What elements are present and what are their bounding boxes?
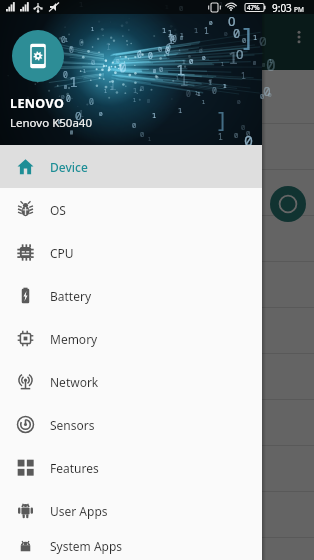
- staticText: Enforcing: [14, 471, 59, 485]
- button[interactable]: SELinux: [0, 446, 314, 491]
- staticText: 0: [120, 64, 125, 75]
- staticText: K50a40_S123: [14, 195, 76, 209]
- staticText: Memory: [50, 331, 98, 347]
- staticText: 0: [233, 25, 241, 41]
- staticText: 0: [64, 84, 68, 91]
- staticText: 1: [223, 82, 227, 90]
- staticText: 0: [140, 84, 145, 94]
- staticText: ]: [243, 18, 252, 53]
- button[interactable]: Kernel: [0, 262, 314, 307]
- staticText: 0: [148, 50, 153, 61]
- staticText: 9:03: [272, 1, 292, 15]
- button[interactable]: Network: [0, 360, 262, 403]
- button[interactable]: Root Access: [0, 354, 314, 399]
- staticText: 1: [152, 111, 157, 121]
- staticText: 1: [178, 106, 183, 116]
- staticText: 1: [241, 70, 246, 81]
- button[interactable]: System Apps: [0, 532, 262, 560]
- staticText: 0: [262, 62, 266, 69]
- staticText: 1: [79, 0, 84, 10]
- staticText: 0: [147, 98, 151, 105]
- staticText: Treble: [14, 499, 47, 514]
- button[interactable]: Treble: [0, 492, 314, 537]
- staticText: System Uptime: [14, 407, 94, 422]
- staticText: 0: [169, 32, 174, 43]
- staticText: 1: [219, 0, 224, 10]
- button[interactable]: CPU: [0, 231, 262, 274]
- staticText: 0: [116, 57, 120, 65]
- staticText: 0: [140, 130, 145, 140]
- staticText: Lenovo K50a40: [10, 115, 93, 131]
- button[interactable]: Android Version: [0, 78, 314, 123]
- staticText: 0: [189, 57, 194, 67]
- staticText: 0: [79, 37, 84, 48]
- button[interactable]: Security Patch: [0, 124, 314, 169]
- staticText: 0: [119, 58, 127, 76]
- staticText: 1: [221, 61, 225, 68]
- staticText: User Apps: [50, 503, 108, 519]
- button[interactable]: User Apps: [0, 489, 262, 532]
- staticText: 0: [165, 45, 170, 56]
- staticText: 0: [166, 42, 171, 53]
- staticText: System Apps: [50, 538, 123, 554]
- staticText: 0: [180, 35, 184, 42]
- staticText: Network: [50, 374, 99, 390]
- staticText: 1: [91, 26, 95, 33]
- staticText: 1: [172, 35, 176, 42]
- staticText: 0: [242, 36, 247, 46]
- staticText: 1: [176, 75, 180, 82]
- staticText: Features: [50, 460, 99, 476]
- staticText: 0: [61, 93, 65, 101]
- button[interactable]: OS: [0, 188, 262, 231]
- staticText: Device: [50, 159, 88, 175]
- staticText: 1: [79, 108, 84, 119]
- staticText: 47%: [247, 3, 260, 11]
- staticText: PM: [294, 5, 304, 14]
- staticText: 0: [70, 130, 74, 137]
- staticText: 0: [236, 45, 244, 63]
- button[interactable]: Build Number: [0, 170, 314, 215]
- staticText: 0: [253, 60, 257, 67]
- staticText: 1: [269, 58, 273, 65]
- button[interactable]: Features: [0, 446, 262, 489]
- button[interactable]: Device: [0, 145, 262, 188]
- button[interactable]: Java VM: [0, 308, 314, 353]
- staticText: 1: [106, 41, 111, 52]
- staticText: 0: [137, 49, 142, 60]
- button[interactable]: System Uptime: [0, 400, 314, 445]
- staticText: 0: [99, 110, 103, 118]
- staticText: OS: [50, 202, 66, 218]
- staticText: 0: [159, 65, 164, 75]
- button[interactable]: Memory: [0, 317, 262, 360]
- staticText: 1: [195, 90, 199, 97]
- staticText: 0: [153, 68, 157, 75]
- staticText: 0: [132, 121, 137, 131]
- staticText: 1: [167, 30, 175, 48]
- button[interactable]: Battery: [0, 274, 262, 317]
- staticText: Build Number: [14, 177, 88, 192]
- staticText: 0: [91, 58, 96, 68]
- button[interactable]: Refresh: [270, 186, 306, 222]
- staticText: unknown: [14, 241, 58, 255]
- staticText: 0: [119, 64, 123, 72]
- staticText: 0: [209, 78, 213, 85]
- staticText: 1: [110, 84, 114, 92]
- staticText: 1: [83, 68, 87, 75]
- staticText: 0: [70, 129, 74, 136]
- staticText: 1: [218, 131, 223, 142]
- staticText: 1: [65, 37, 69, 44]
- button[interactable]: Bootloader: [0, 216, 314, 261]
- staticText: 0: [241, 123, 246, 133]
- staticText: 1: [69, 71, 79, 91]
- staticText: 1: [168, 28, 173, 38]
- staticText: 1: [204, 25, 209, 36]
- button[interactable]: Sensors: [0, 403, 262, 446]
- staticText: 1: [133, 97, 137, 104]
- staticText: 0: [224, 30, 228, 38]
- button[interactable]: Device avatar: [12, 30, 64, 82]
- button[interactable]: More options: [288, 26, 310, 48]
- staticText: 0: [202, 54, 206, 62]
